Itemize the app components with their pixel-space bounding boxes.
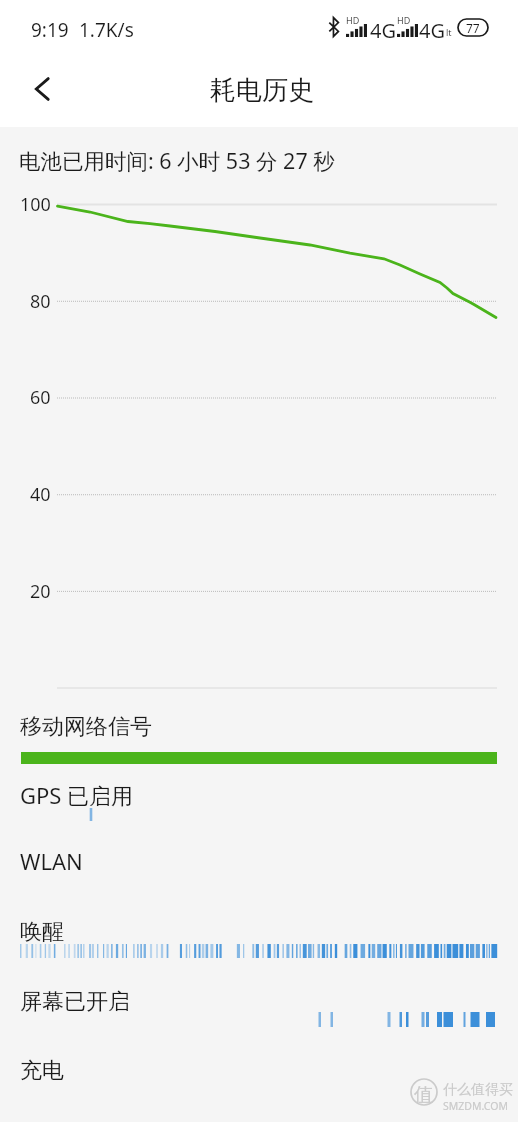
staticText: 20 xyxy=(30,579,51,604)
staticText: HD xyxy=(346,14,360,26)
button[interactable]: Back xyxy=(18,65,66,113)
staticText: GPS 已启用 xyxy=(20,780,134,810)
staticText: HD xyxy=(397,14,411,26)
staticText: WLAN xyxy=(20,846,83,876)
staticText: 100 xyxy=(20,192,51,217)
button[interactable]: 移动网络信号 xyxy=(0,711,518,743)
staticText: 耗电历史 xyxy=(210,74,314,107)
staticText: 充电 xyxy=(20,1057,64,1085)
button[interactable]: 唤醒 xyxy=(0,916,518,948)
staticText: 屏幕已开启 xyxy=(20,988,130,1016)
staticText: 77 xyxy=(466,20,480,36)
staticText: 值 xyxy=(414,1083,433,1107)
staticText: 9:19 xyxy=(31,17,69,43)
staticText: 什么值得买 xyxy=(443,1081,513,1099)
staticText: SMZDM.COM xyxy=(443,1099,508,1113)
staticText: 唤醒 xyxy=(20,918,64,946)
staticText: 电池已用时间: 6 小时 53 分 27 秒 xyxy=(19,146,335,175)
button[interactable]: 屏幕已开启 xyxy=(0,986,518,1018)
staticText: 60 xyxy=(30,385,51,410)
staticText: 4G xyxy=(370,17,396,44)
staticText: 80 xyxy=(30,289,51,314)
staticText: 移动网络信号 xyxy=(20,713,152,741)
button[interactable]: GPS 已启用 xyxy=(0,779,518,811)
staticText: 4G xyxy=(419,17,445,44)
staticText: 1.7K/s xyxy=(79,17,134,43)
button[interactable]: 充电 xyxy=(0,1055,518,1087)
button[interactable]: WLAN xyxy=(0,845,518,877)
staticText: 40 xyxy=(30,482,51,507)
staticText: lt xyxy=(446,26,452,38)
